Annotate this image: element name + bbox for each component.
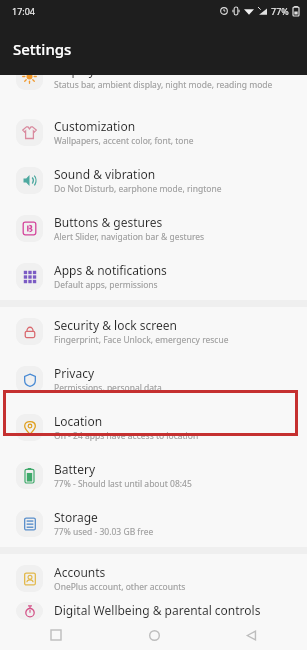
button[interactable]: Digital Wellbeing & parental controls	[0, 602, 307, 620]
button[interactable]: Privacy	[0, 355, 307, 403]
button[interactable]: Storage	[0, 499, 307, 547]
button[interactable]: Home	[138, 620, 170, 650]
staticText: Buttons & gestures	[54, 214, 163, 230]
button[interactable]: Apps & notifications	[0, 252, 307, 300]
button[interactable]: Battery	[0, 451, 307, 499]
staticText: Apps & notifications	[54, 262, 167, 278]
staticText: Location	[54, 413, 103, 429]
button[interactable]: Sound & vibration	[0, 156, 307, 204]
staticText: Display	[54, 75, 95, 78]
staticText: 77%	[271, 5, 289, 17]
staticText: 77% used - 30.03 GB free	[54, 526, 154, 538]
button[interactable]: Display	[0, 75, 307, 93]
staticText: 77% - Should last until about 08:45	[54, 478, 192, 490]
button[interactable]: Recent apps	[40, 620, 72, 650]
staticText: Alert Slider, navigation bar & gestures	[54, 231, 205, 243]
staticText: Security & lock screen	[54, 317, 177, 333]
staticText: Battery	[54, 461, 96, 477]
staticText: Accounts	[54, 564, 106, 580]
staticText: Customization	[54, 118, 136, 134]
staticText: Sound & vibration	[54, 166, 156, 182]
staticText: Storage	[54, 509, 98, 525]
button[interactable]: Location	[0, 403, 307, 451]
staticText: Privacy	[54, 365, 95, 381]
staticText: Digital Wellbeing & parental controls	[54, 602, 261, 618]
staticText: Fingerprint, Face Unlock, emergency resc…	[54, 334, 229, 346]
staticText: Default apps, permissions	[54, 279, 158, 291]
staticText: Settings	[13, 39, 72, 59]
staticText: Status bar, ambient display, night mode,…	[54, 79, 273, 91]
staticText: Do Not Disturb, earphone mode, ringtone	[54, 183, 222, 195]
button[interactable]: Accounts	[0, 554, 307, 602]
staticText: On - 24 apps have access to location	[54, 430, 199, 442]
button[interactable]: Security & lock screen	[0, 307, 307, 355]
button[interactable]: Buttons & gestures	[0, 204, 307, 252]
staticText: OnePlus account, other accounts	[54, 581, 186, 593]
button[interactable]: Back	[235, 620, 267, 650]
staticText: Wallpapers, accent color, font, tone	[54, 135, 194, 147]
staticText: Permissions, personal data	[54, 382, 162, 394]
button[interactable]: Customization	[0, 108, 307, 156]
staticText: 17:04	[12, 5, 36, 17]
